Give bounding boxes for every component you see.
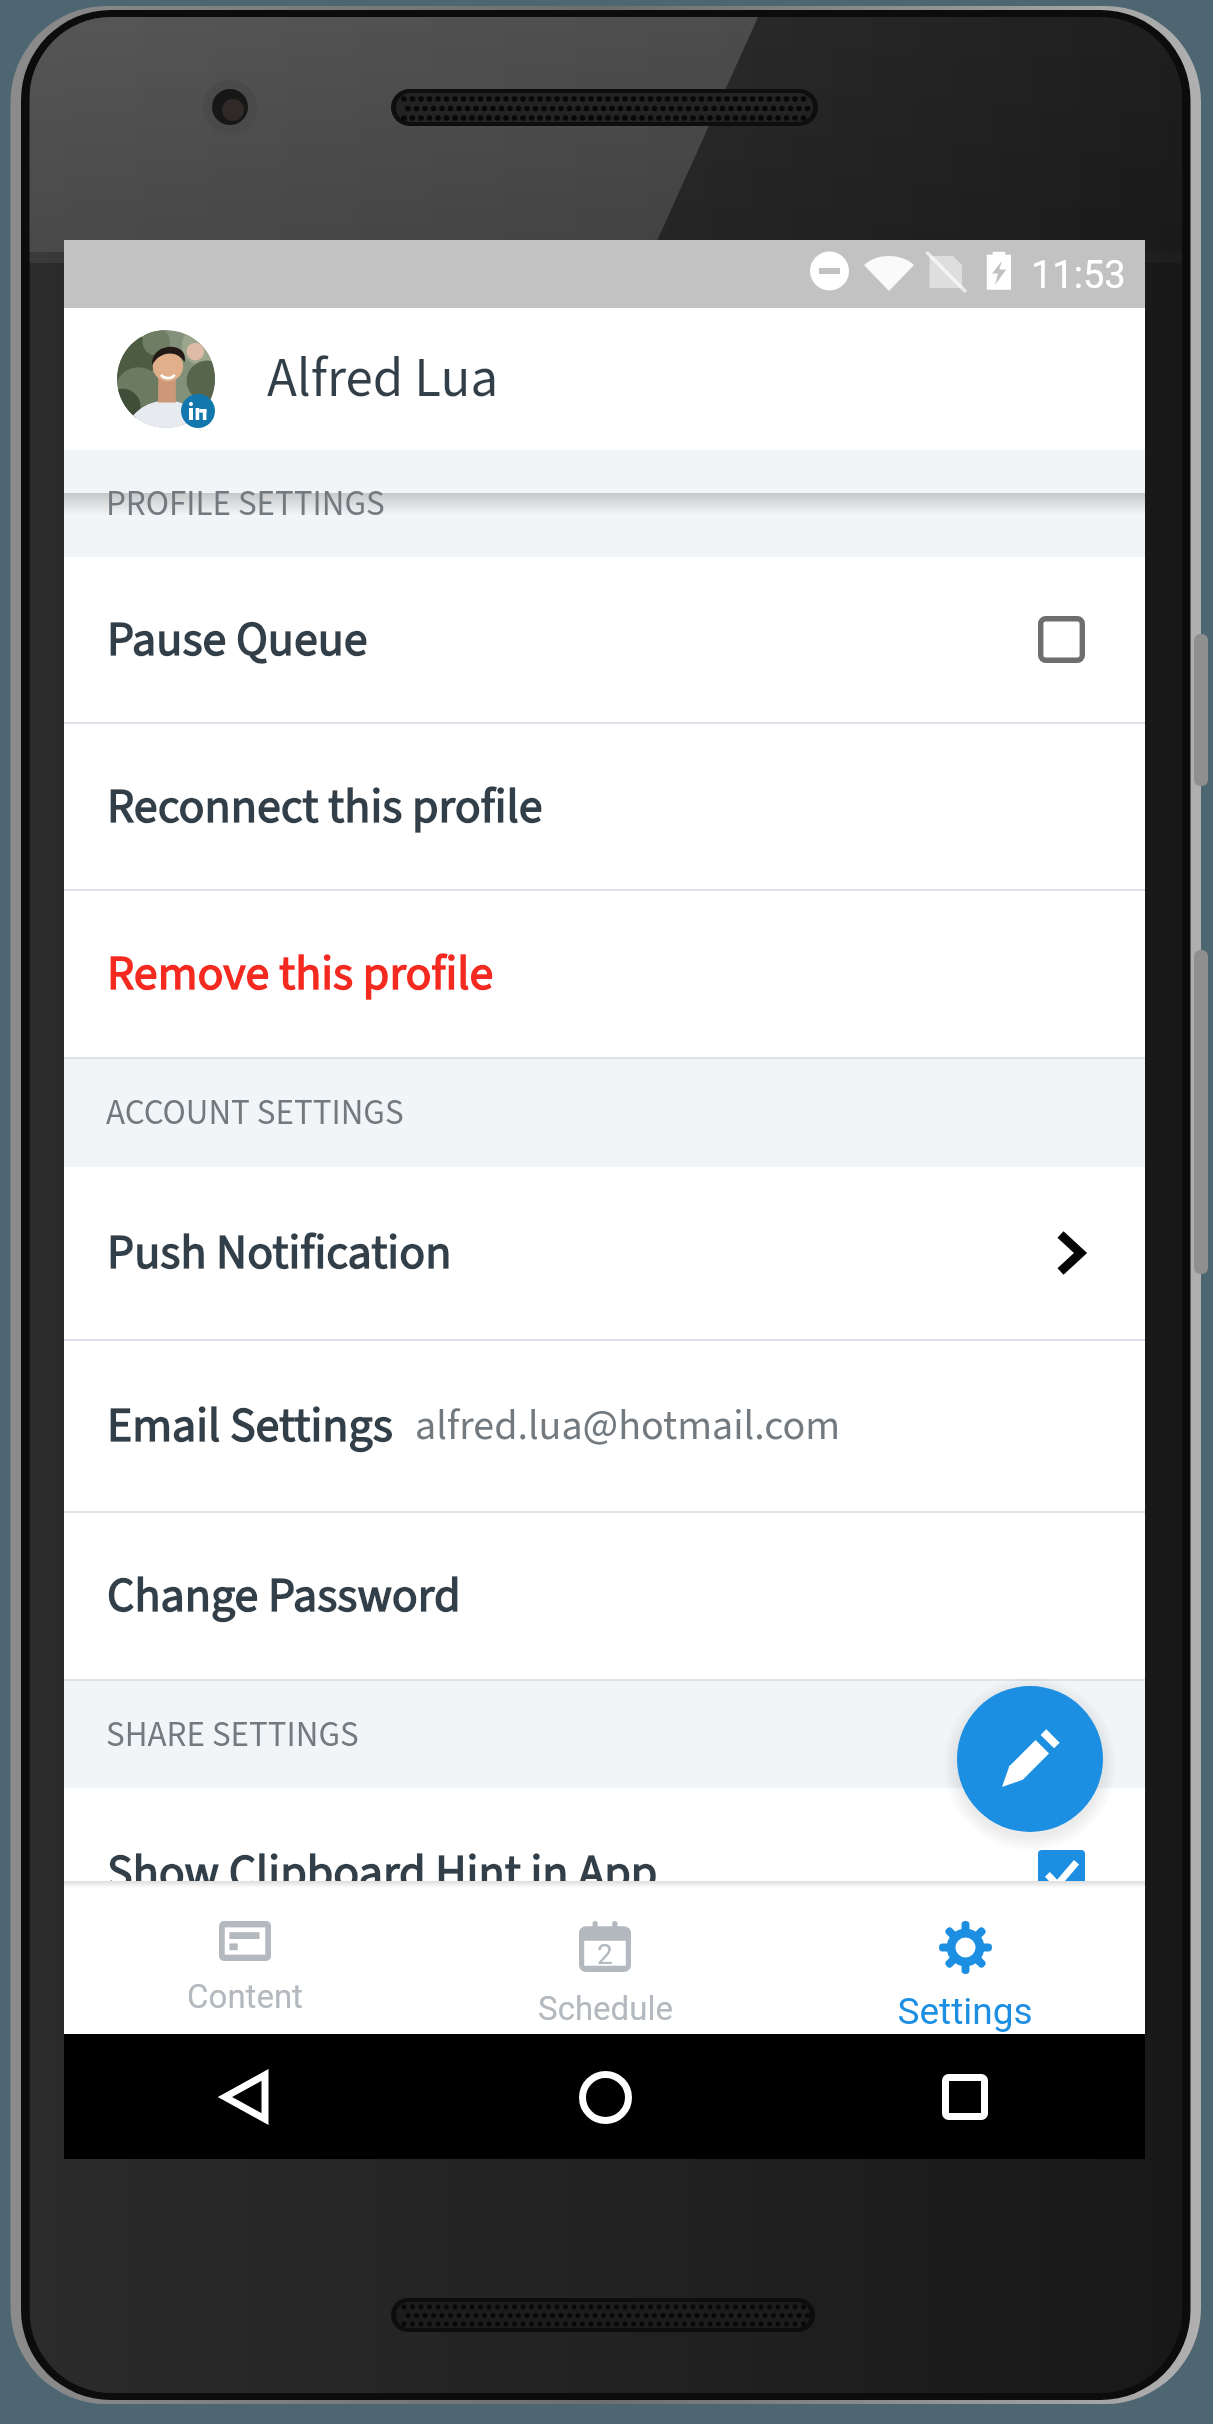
- staticText: SHARE SETTINGS: [106, 1710, 359, 1760]
- staticText: Schedule: [538, 1989, 673, 2028]
- staticText: Pause Queue: [107, 606, 368, 674]
- button[interactable]: Settings: [785, 1881, 1145, 2033]
- staticText: Remove this profile: [107, 940, 494, 1008]
- staticText: Show Clipboard Hint in App: [107, 1839, 658, 1881]
- staticText: Settings: [897, 1990, 1033, 2033]
- button[interactable]: Home: [570, 2062, 640, 2132]
- staticText: Reconnect this profile: [107, 773, 543, 841]
- button[interactable]: Pause Queue: [64, 557, 1145, 722]
- button[interactable]: Compose: [957, 1686, 1103, 1832]
- button[interactable]: Remove this profile: [64, 891, 1145, 1057]
- button[interactable]: Back: [210, 2062, 280, 2132]
- staticText: Alfred Lua: [267, 340, 499, 418]
- button[interactable]: Alfred Lua: [64, 308, 1145, 450]
- button[interactable]: Email Settings: [64, 1341, 1145, 1511]
- button[interactable]: Push Notification: [64, 1167, 1145, 1339]
- button[interactable]: Recents: [930, 2062, 1000, 2132]
- staticText: Push Notification: [107, 1219, 452, 1287]
- staticText: 11:53: [1031, 253, 1126, 298]
- staticText: 2: [597, 1938, 613, 1971]
- button[interactable]: Change Password: [64, 1513, 1145, 1679]
- button[interactable]: Reconnect this profile: [64, 724, 1145, 889]
- button[interactable]: 2: [425, 1881, 785, 2028]
- staticText: ACCOUNT SETTINGS: [106, 1088, 404, 1138]
- button[interactable]: Show Clipboard Hint in App: [64, 1788, 1145, 1881]
- staticText: PROFILE SETTINGS: [106, 479, 385, 529]
- staticText: alfred.lua@hotmail.com: [415, 1396, 841, 1456]
- staticText: Email Settings: [107, 1392, 393, 1460]
- button[interactable]: Content: [64, 1881, 425, 2016]
- staticText: Change Password: [107, 1562, 461, 1630]
- staticText: Content: [187, 1977, 303, 2016]
